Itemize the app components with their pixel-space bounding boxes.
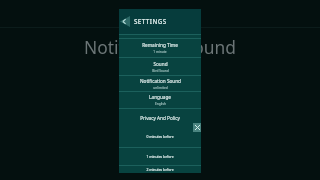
staticText: Notification Sound: [140, 78, 181, 84]
button[interactable]: Back: [120, 16, 130, 27]
staticText: 0 minutes before: [146, 134, 174, 139]
staticText: 2 minutes before: [146, 167, 174, 172]
staticText: Language: [149, 94, 171, 100]
staticText: Privacy And Policy: [140, 115, 180, 121]
staticText: 1 minute: [153, 50, 167, 54]
button[interactable]: Notification Sound: [119, 76, 201, 91]
button[interactable]: 2 minutes before: [119, 166, 201, 173]
staticText: Sound: [153, 61, 168, 67]
staticText: Notification Sound: [84, 35, 236, 59]
button[interactable]: 1 minutes before: [119, 148, 201, 165]
staticText: English: [155, 102, 166, 106]
button[interactable]: Remaining Time: [119, 39, 201, 57]
button[interactable]: Language: [119, 92, 201, 108]
staticText: Bird Sound: [152, 69, 169, 73]
staticText: Remaining Time: [142, 42, 178, 48]
button[interactable]: Privacy And Policy: [119, 109, 201, 126]
button[interactable]: Sound: [119, 58, 201, 75]
button[interactable]: 0 minutes before: [119, 126, 201, 147]
staticText: unlimited: [153, 86, 168, 90]
button[interactable]: Close: [193, 123, 201, 132]
staticText: SETTINGS: [134, 17, 167, 26]
staticText: 1 minutes before: [146, 154, 174, 159]
